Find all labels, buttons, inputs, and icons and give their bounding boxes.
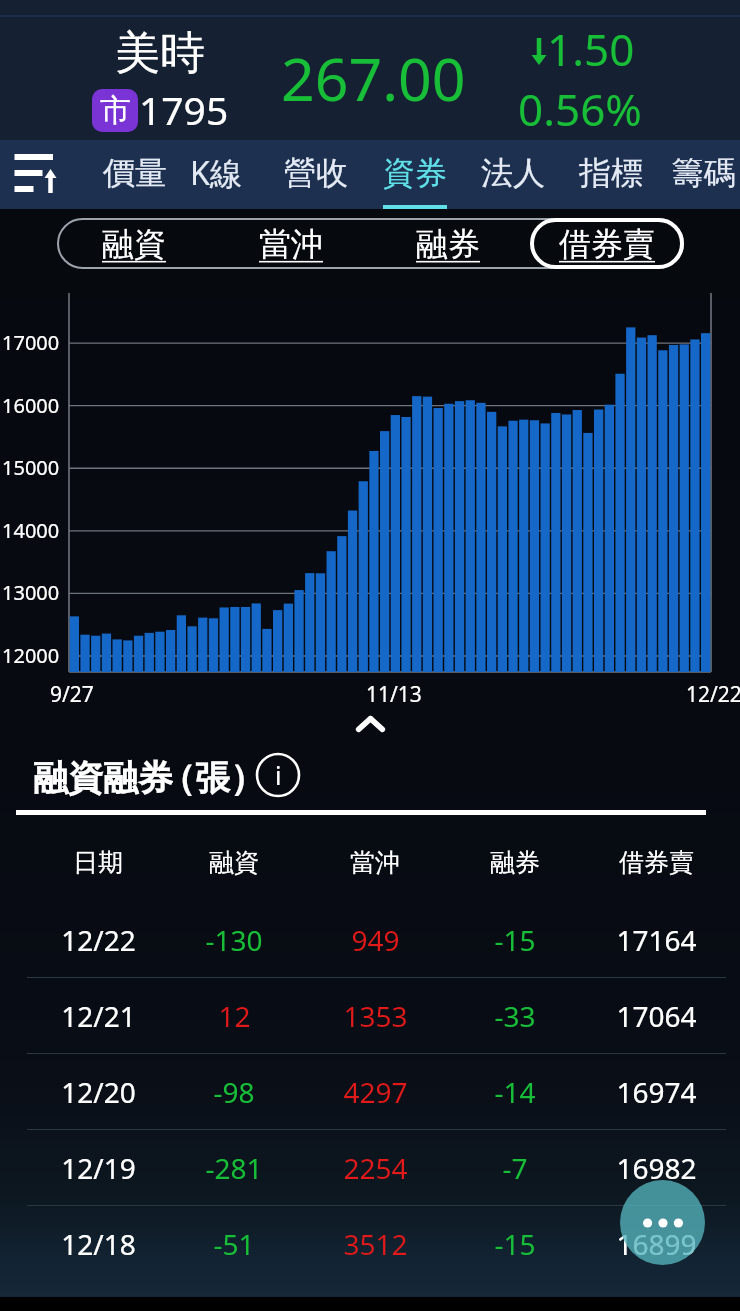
staticText: 9/27 xyxy=(50,680,94,709)
staticText: 2254 xyxy=(343,1149,408,1187)
staticText: i xyxy=(275,758,282,792)
button[interactable]: Sort xyxy=(0,140,78,209)
staticText: 1.50 xyxy=(547,19,635,79)
staticText: 15000 xyxy=(2,454,60,481)
staticText: 籌碼 xyxy=(672,153,736,193)
button[interactable]: 借券賣 xyxy=(530,218,684,269)
staticText: 12/22 xyxy=(61,921,136,959)
button[interactable]: 資券 xyxy=(367,140,463,209)
staticText: 融券 xyxy=(490,847,540,878)
staticText: 16974 xyxy=(616,1073,697,1111)
staticText: 17064 xyxy=(616,997,697,1035)
staticText: 1795 xyxy=(139,83,229,136)
button[interactable]: 12/19 xyxy=(0,1130,740,1205)
button[interactable]: 12/20 xyxy=(0,1054,740,1129)
staticText: -98 xyxy=(213,1073,255,1111)
button[interactable]: 當沖 xyxy=(229,218,353,269)
button[interactable]: 融資 xyxy=(72,218,196,269)
staticText: 指標 xyxy=(579,153,643,193)
staticText: 267.00 xyxy=(281,38,466,118)
staticText: 12 xyxy=(218,997,251,1035)
button[interactable]: 12/18 xyxy=(0,1206,740,1281)
button[interactable]: More options xyxy=(620,1180,705,1265)
staticText: 融資 xyxy=(209,847,259,878)
staticText: 16000 xyxy=(2,392,60,419)
staticText: 美時 xyxy=(115,25,205,82)
staticText: 0.56% xyxy=(518,79,642,139)
staticText: -33 xyxy=(494,997,536,1035)
button[interactable]: 法人 xyxy=(465,140,561,209)
button[interactable]: 12/21 xyxy=(0,978,740,1053)
button[interactable]: 日期 xyxy=(0,830,740,902)
staticText: -281 xyxy=(205,1149,263,1187)
button[interactable]: 籌碼 xyxy=(656,140,740,209)
staticText: 市 xyxy=(100,91,131,130)
staticText: -7 xyxy=(502,1149,528,1187)
staticText: 12000 xyxy=(2,642,60,669)
staticText: 融資融券 xyxy=(33,756,173,798)
staticText: 13000 xyxy=(2,579,60,606)
button[interactable]: 融券 xyxy=(386,218,510,269)
staticText: （張） xyxy=(160,756,265,798)
staticText: 11/13 xyxy=(366,680,422,709)
staticText: 12/22 xyxy=(686,680,740,709)
staticText: -15 xyxy=(494,1225,536,1263)
staticText: 17000 xyxy=(2,329,60,356)
button[interactable]: 12/22 xyxy=(0,902,740,977)
staticText: -14 xyxy=(494,1073,536,1111)
staticText: 融資 xyxy=(102,224,166,264)
button[interactable]: Info xyxy=(256,754,300,796)
staticText: 當沖 xyxy=(350,847,400,878)
staticText: 借券賣 xyxy=(559,224,655,264)
button[interactable]: Collapse chart xyxy=(0,701,740,747)
staticText: 3512 xyxy=(343,1225,408,1263)
staticText: 12/20 xyxy=(61,1073,136,1111)
button[interactable]: 指標 xyxy=(563,140,659,209)
staticText: -51 xyxy=(213,1225,255,1263)
staticText: 12/18 xyxy=(61,1225,136,1263)
button[interactable]: 價量 xyxy=(87,140,183,209)
staticText: 16899 xyxy=(616,1225,697,1263)
staticText: K線 xyxy=(190,151,242,195)
staticText: 4297 xyxy=(343,1073,408,1111)
staticText: 12/21 xyxy=(61,997,136,1035)
staticText: 日期 xyxy=(73,847,123,878)
staticText: 949 xyxy=(351,921,400,959)
staticText: -130 xyxy=(205,921,263,959)
staticText: 營收 xyxy=(284,153,348,193)
staticText: 17164 xyxy=(616,921,697,959)
staticText: 法人 xyxy=(481,153,545,193)
staticText: 12/19 xyxy=(61,1149,136,1187)
staticText: 資券 xyxy=(383,153,447,193)
staticText: 1353 xyxy=(343,997,408,1035)
staticText: 融券 xyxy=(416,224,480,264)
staticText: 當沖 xyxy=(259,224,323,264)
staticText: 借券賣 xyxy=(619,847,694,878)
button[interactable]: K線 xyxy=(168,140,264,209)
staticText: 14000 xyxy=(2,517,60,544)
staticText: 16982 xyxy=(616,1149,697,1187)
button[interactable]: 營收 xyxy=(268,140,364,209)
staticText: 價量 xyxy=(103,153,167,193)
staticText: -15 xyxy=(494,921,536,959)
